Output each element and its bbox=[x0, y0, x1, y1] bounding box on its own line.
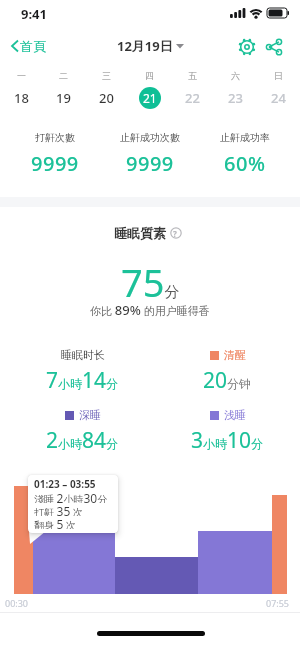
staticText: ? bbox=[173, 228, 177, 239]
button[interactable]: 止鼾成功次數 bbox=[102, 131, 197, 177]
staticText: 19 bbox=[56, 89, 71, 107]
button[interactable]: 22 bbox=[171, 86, 214, 110]
staticText: 一 bbox=[17, 70, 26, 81]
staticText: 翻身 5 次 bbox=[34, 516, 77, 529]
staticText: 24 bbox=[271, 89, 286, 107]
staticText: 20分钟 bbox=[203, 366, 252, 395]
staticText: 五 bbox=[188, 70, 197, 81]
staticText: 六 bbox=[231, 70, 240, 81]
staticText: 2小時84分 bbox=[46, 426, 119, 455]
button[interactable]: 18 bbox=[0, 86, 42, 110]
button[interactable]: 24 bbox=[257, 86, 300, 110]
staticText: 18 bbox=[14, 89, 29, 107]
staticText: 淺睡 2小時30分 bbox=[34, 490, 108, 503]
button[interactable]: 清醒 bbox=[155, 348, 300, 395]
staticText: 你比 89% 的用户睡得香 bbox=[90, 301, 210, 319]
staticText: 3小時10分 bbox=[191, 426, 264, 455]
staticText: 首頁 bbox=[20, 38, 46, 54]
staticText: 23 bbox=[228, 89, 243, 107]
staticText: 60% bbox=[224, 150, 266, 177]
staticText: 三 bbox=[102, 70, 111, 81]
staticText: 7小時14分 bbox=[46, 366, 119, 395]
staticText: 9999 bbox=[126, 150, 174, 177]
staticText: 20 bbox=[99, 89, 114, 107]
staticText: 21 bbox=[143, 90, 157, 106]
staticText: 00:30 bbox=[5, 597, 29, 609]
staticText: 01:23 – 03:55 bbox=[34, 477, 96, 490]
button[interactable] bbox=[266, 39, 283, 55]
staticText: 打鼾 35 次 bbox=[34, 503, 83, 516]
staticText: 止鼾成功率 bbox=[220, 131, 270, 144]
button[interactable]: 23 bbox=[214, 86, 257, 110]
staticText: 浅睡 bbox=[224, 408, 246, 422]
staticText: 睡眠質素 bbox=[114, 225, 166, 241]
staticText: 9:41 bbox=[21, 5, 47, 23]
button[interactable]: 19 bbox=[42, 86, 85, 110]
staticText: 四 bbox=[145, 70, 154, 81]
button[interactable]: 浅睡 bbox=[155, 408, 300, 455]
staticText: 止鼾成功次數 bbox=[120, 131, 180, 144]
staticText: 12月19日 bbox=[117, 37, 173, 55]
button[interactable] bbox=[238, 38, 256, 56]
button[interactable]: 12月19日 bbox=[117, 37, 184, 55]
button[interactable]: 首頁 bbox=[10, 30, 46, 62]
button[interactable]: 21 bbox=[128, 86, 171, 110]
staticText: 22 bbox=[185, 89, 200, 107]
staticText: 07:55 bbox=[266, 597, 290, 609]
staticText: 睡眠时长 bbox=[61, 348, 105, 362]
button[interactable]: 20 bbox=[85, 86, 128, 110]
staticText: 清醒 bbox=[224, 348, 246, 362]
staticText: 打鼾次數 bbox=[35, 131, 75, 144]
staticText: 9999 bbox=[31, 150, 79, 177]
button[interactable]: 打鼾次數 bbox=[8, 131, 102, 177]
staticText: 75分 bbox=[121, 256, 180, 308]
button[interactable]: 深睡 bbox=[10, 408, 155, 455]
staticText: 二 bbox=[59, 70, 68, 81]
staticText: 日 bbox=[274, 70, 283, 81]
button[interactable]: 睡眠时长 bbox=[10, 348, 155, 395]
button[interactable]: 止鼾成功率 bbox=[197, 131, 292, 177]
button[interactable]: 01:23 – 03:55 bbox=[28, 475, 118, 533]
staticText: 深睡 bbox=[79, 408, 101, 422]
